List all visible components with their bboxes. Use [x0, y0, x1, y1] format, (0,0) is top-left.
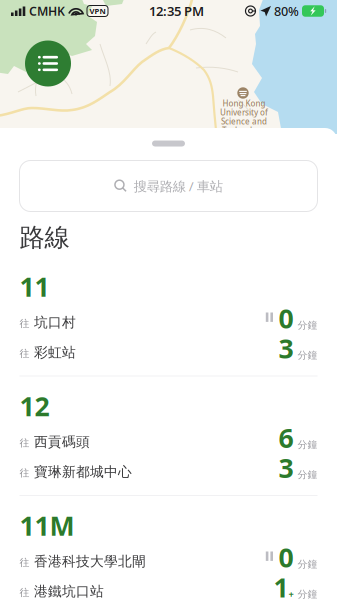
- staticText: 搜尋路線 / 車站: [134, 177, 223, 195]
- staticText: 1: [273, 569, 288, 600]
- staticText: 分鐘: [297, 558, 317, 570]
- staticText: 往: [19, 586, 29, 599]
- staticText: 12:35 PM: [149, 2, 204, 20]
- staticText: 12: [19, 388, 49, 424]
- staticText: 分鐘: [297, 438, 317, 451]
- staticText: Science and: [221, 116, 267, 127]
- staticText: 往: [19, 556, 29, 569]
- staticText: 寶琳新都城中心: [34, 463, 132, 481]
- button[interactable]: 11M: [0, 503, 337, 600]
- staticText: CMHK: [29, 3, 65, 19]
- button[interactable]: Route list: [23, 38, 73, 88]
- button[interactable]: 12: [0, 383, 337, 503]
- staticText: Technology: [222, 125, 266, 136]
- staticText: +: [288, 588, 293, 600]
- staticText: Hong Kong: [222, 98, 265, 109]
- staticText: 分鐘: [297, 319, 317, 331]
- staticText: 往: [19, 317, 29, 330]
- staticText: 80%: [274, 2, 299, 20]
- staticText: 往: [19, 347, 29, 360]
- staticText: 坑口村: [34, 314, 76, 331]
- staticText: 0: [278, 539, 293, 575]
- staticText: 11M: [19, 507, 74, 544]
- staticText: VPN: [89, 6, 105, 16]
- staticText: 往: [19, 437, 29, 449]
- button[interactable]: 搜尋路線 / 車站: [19, 160, 317, 211]
- staticText: 路線: [19, 222, 69, 253]
- staticText: 分鐘: [297, 349, 317, 361]
- staticText: 香港科技大學北閘: [34, 553, 146, 570]
- staticText: 11: [19, 268, 49, 305]
- staticText: 往: [19, 467, 29, 479]
- staticText: University of: [220, 107, 268, 118]
- staticText: 分鐘: [297, 468, 317, 481]
- staticText: 0: [278, 300, 293, 336]
- staticText: 3: [278, 449, 293, 486]
- staticText: 6: [278, 419, 293, 456]
- staticText: 3: [278, 330, 293, 366]
- staticText: 彩虹站: [34, 344, 76, 361]
- button[interactable]: 11: [0, 264, 337, 383]
- staticText: 西貢碼頭: [34, 433, 90, 451]
- staticText: 港鐵坑口站: [34, 583, 104, 600]
- staticText: 分鐘: [297, 588, 317, 600]
